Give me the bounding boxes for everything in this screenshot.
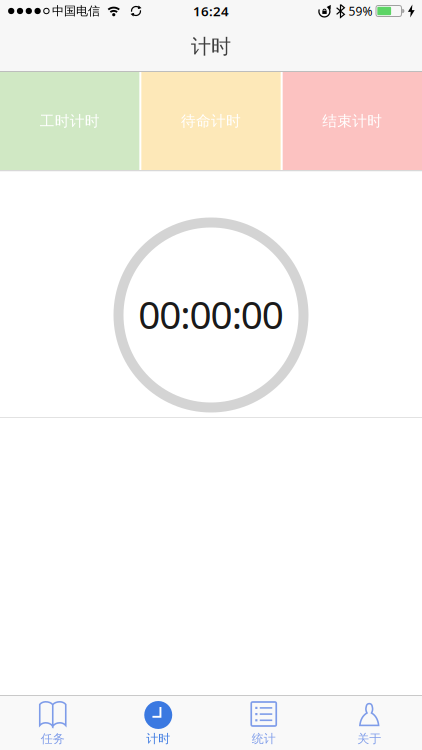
staticText: 任务 — [41, 731, 65, 746]
button[interactable]: 统计 — [211, 701, 316, 746]
button[interactable]: 结束计时 — [283, 72, 422, 170]
staticText: 中国电信 — [52, 4, 100, 18]
button[interactable]: 计时 — [105, 701, 211, 746]
staticText: 00:00:00 — [138, 288, 284, 340]
button[interactable]: 待命计时 — [141, 72, 281, 170]
staticText: 计时 — [146, 731, 170, 746]
staticText: 工时计时 — [40, 112, 100, 130]
staticText: 计时 — [191, 34, 231, 59]
staticText: 59% — [348, 3, 372, 19]
button[interactable]: 工时计时 — [0, 72, 139, 170]
staticText: 16:24 — [193, 2, 229, 20]
staticText: 待命计时 — [181, 112, 241, 130]
staticText: 关于 — [357, 731, 381, 746]
button[interactable]: 任务 — [0, 701, 105, 746]
staticText: 统计 — [252, 731, 276, 746]
button[interactable]: 关于 — [316, 701, 422, 746]
staticText: 结束计时 — [322, 112, 382, 130]
